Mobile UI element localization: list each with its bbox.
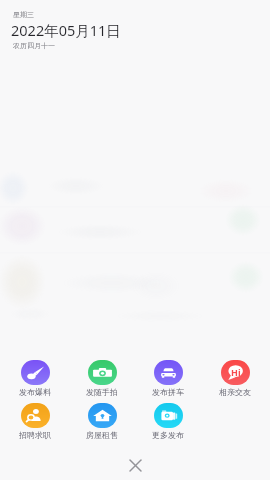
button[interactable]: 关闭 — [122, 452, 148, 478]
staticText: 2022年05月11日 — [11, 20, 121, 40]
staticText: 更多发布 — [152, 430, 184, 440]
staticText: 房屋租售 — [86, 430, 118, 440]
button[interactable]: 更多发布 — [136, 403, 200, 440]
staticText: Hi — [231, 366, 241, 378]
staticText: 发布爆料 — [19, 387, 51, 397]
button[interactable]: 房屋租售 — [70, 403, 134, 440]
staticText: 发随手拍 — [86, 387, 118, 397]
button[interactable]: 发布爆料 — [3, 360, 67, 397]
staticText: 招聘求职 — [19, 430, 51, 440]
staticText: 农历四月十一 — [13, 41, 55, 50]
staticText: 星期三 — [13, 10, 34, 19]
button[interactable]: 发随手拍 — [70, 360, 134, 397]
button[interactable]: Hi — [203, 360, 267, 397]
staticText: 相亲交友 — [219, 387, 251, 397]
staticText: 发布拼车 — [152, 387, 184, 397]
button[interactable]: 招聘求职 — [3, 403, 67, 440]
button[interactable]: 发布拼车 — [136, 360, 200, 397]
